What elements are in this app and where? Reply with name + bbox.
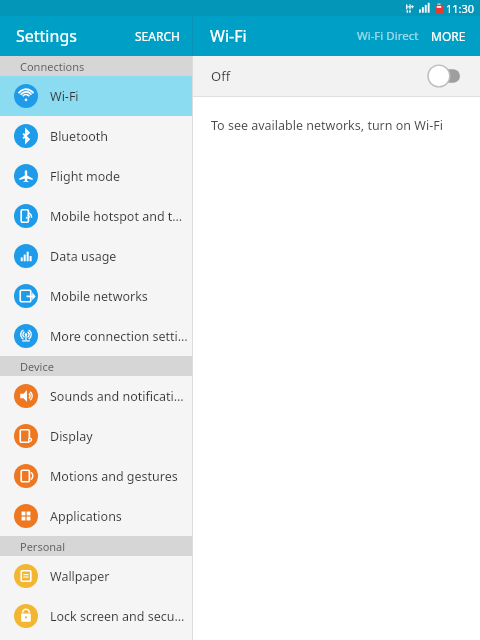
staticText: MORE [431,28,466,44]
button[interactable]: Flight mode [0,156,192,196]
button[interactable]: Off [193,56,480,96]
staticText: Applications [50,508,122,525]
staticText: Wi-Fi [210,25,247,47]
staticText: Settings [16,25,77,47]
button[interactable]: Display [0,416,192,456]
button[interactable]: MORE [425,20,472,52]
staticText: Mobile hotspot and tet.. [50,208,188,225]
staticText: Personal [20,539,66,554]
button[interactable]: Wi-Fi toggle, off [426,65,462,87]
staticText: Off [211,67,231,85]
staticText: Lock screen and securi.. [50,608,188,625]
staticText: More connection settin.. [50,328,188,345]
button[interactable]: Wallpaper [0,556,192,596]
button[interactable]: Sounds and notification.. [0,376,192,416]
button[interactable]: Wi-Fi [0,76,192,116]
button[interactable]: Mobile networks [0,276,192,316]
staticText: To see available networks, turn on Wi-Fi [211,117,443,134]
button[interactable]: Wi-Fi Direct [351,20,425,52]
button[interactable]: Bluetooth [0,116,192,156]
staticText: Bluetooth [50,128,109,145]
staticText: Flight mode [50,168,121,185]
button[interactable]: Lock screen and securi.. [0,596,192,636]
staticText: Wi-Fi [50,88,79,105]
staticText: Motions and gestures [50,468,178,485]
staticText: Device [20,359,54,374]
button[interactable]: More connection settin.. [0,316,192,356]
staticText: Wi-Fi Direct [357,28,419,44]
staticText: Display [50,428,93,445]
staticText: SEARCH [135,28,180,44]
staticText: Wallpaper [50,568,110,585]
button[interactable]: Data usage [0,236,192,276]
button[interactable]: Applications [0,496,192,536]
staticText: Connections [20,59,85,74]
staticText: Mobile networks [50,288,148,305]
button[interactable]: SEARCH [123,20,192,52]
button[interactable]: Mobile hotspot and tet.. [0,196,192,236]
staticText: 11:30 [446,1,475,16]
button[interactable]: Motions and gestures [0,456,192,496]
staticText: Data usage [50,248,117,265]
staticText: Sounds and notification.. [50,388,188,405]
